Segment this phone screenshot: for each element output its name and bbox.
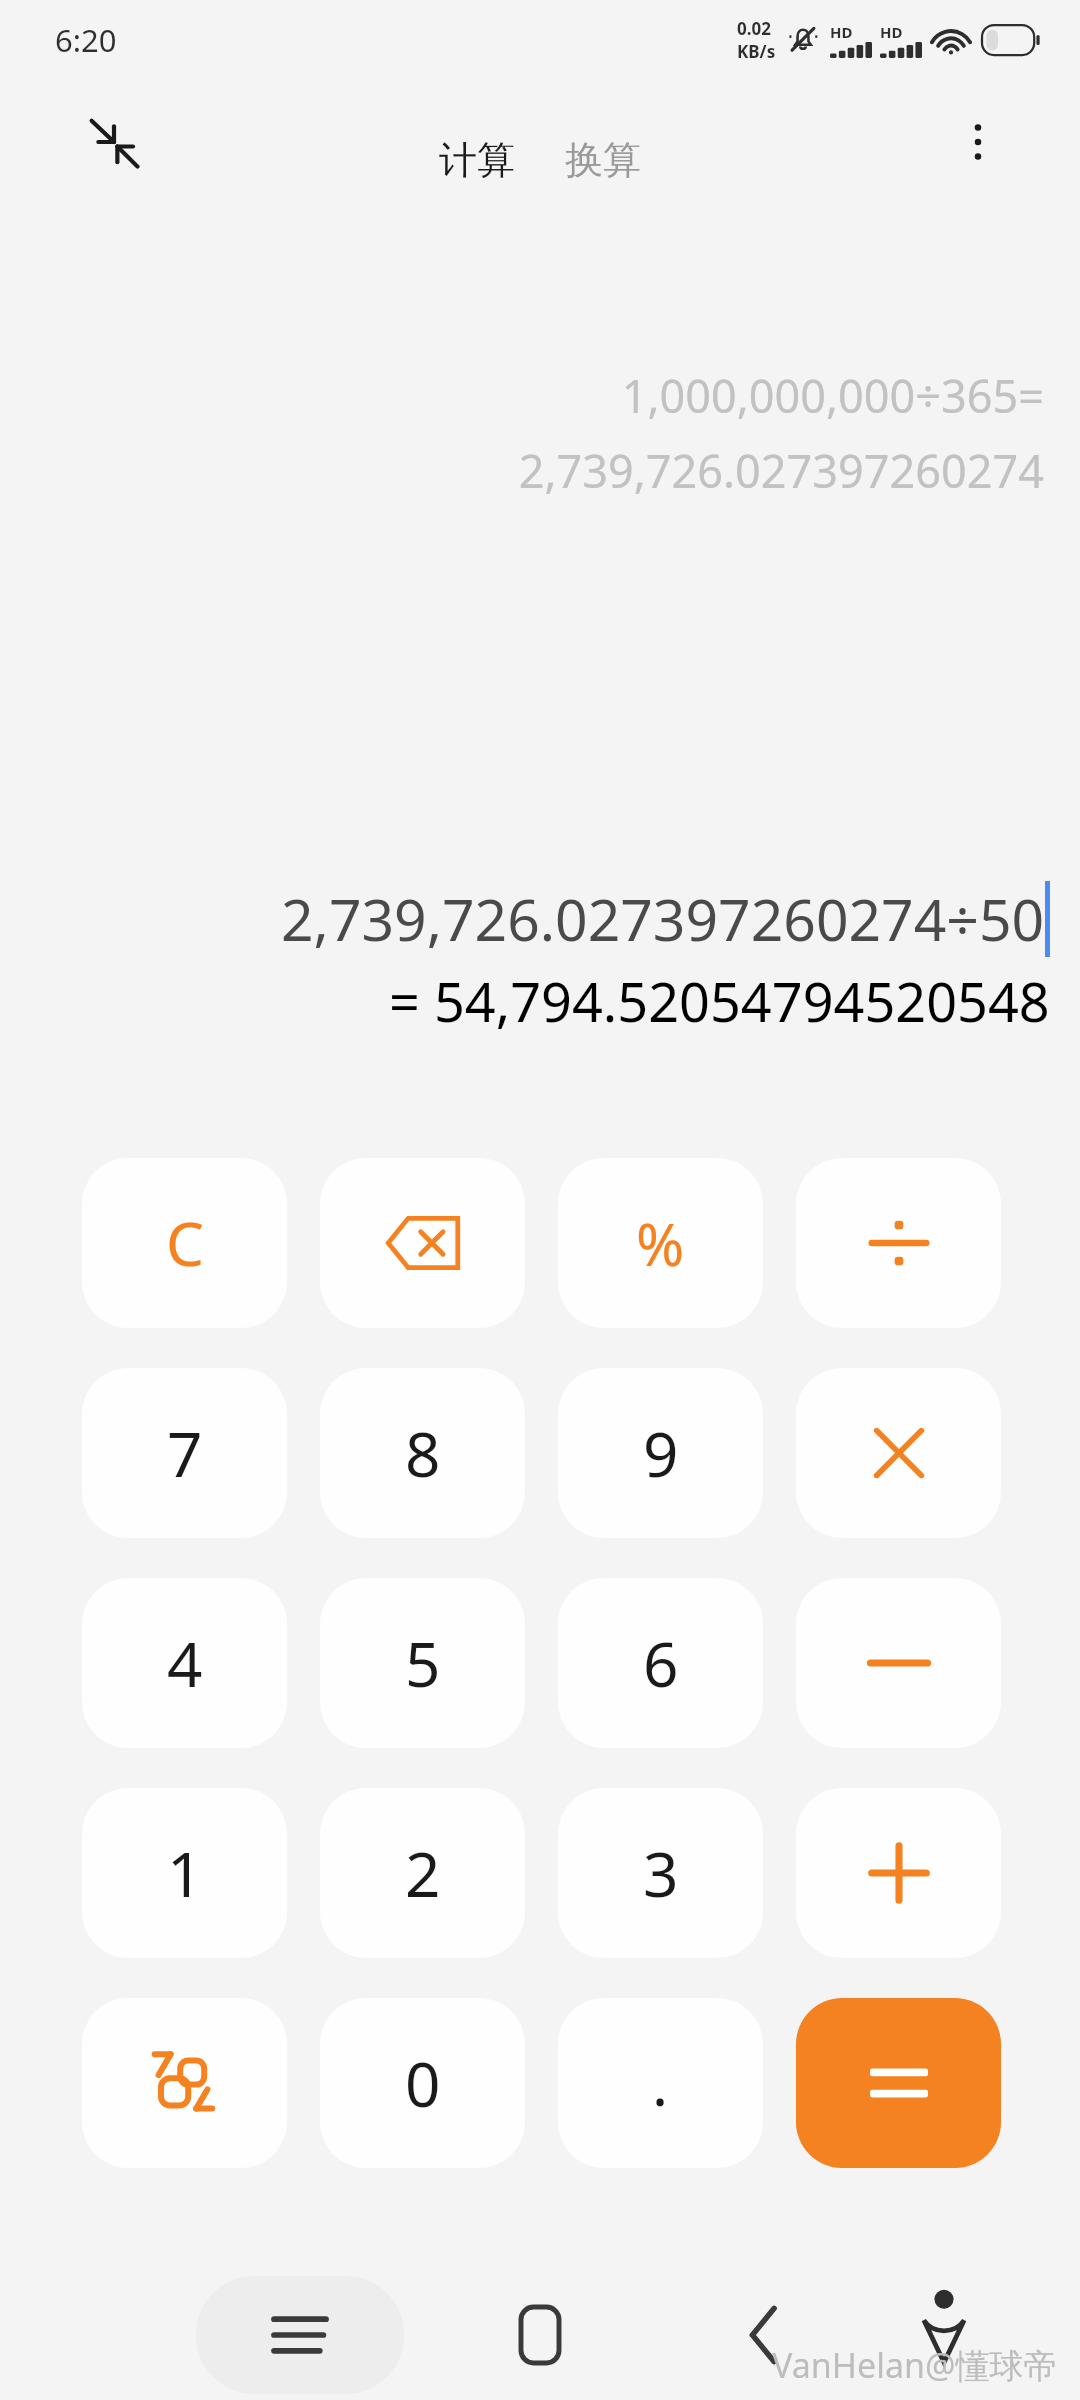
staticText: 7: [167, 1411, 203, 1495]
staticText: 6: [643, 1621, 679, 1705]
staticText: C: [166, 1202, 204, 1284]
button[interactable]: Percent: [558, 1158, 763, 1328]
button[interactable]: .: [558, 1998, 763, 2168]
staticText: KB/s: [737, 40, 776, 63]
staticText: 2: [405, 1831, 441, 1915]
button[interactable]: 8: [320, 1368, 525, 1538]
button[interactable]: 4: [82, 1578, 287, 1748]
button[interactable]: 计算: [431, 132, 523, 188]
button[interactable]: 1: [82, 1788, 287, 1958]
button[interactable]: 3: [558, 1788, 763, 1958]
staticText: %: [636, 1204, 685, 1283]
button[interactable]: 1,000,000,000÷365=: [40, 365, 1044, 501]
staticText: = 54,794.52054794520548: [389, 964, 1050, 1038]
button[interactable]: Plus: [796, 1788, 1001, 1958]
staticText: 6:20: [55, 19, 117, 61]
button[interactable]: Backspace: [320, 1158, 525, 1328]
staticText: 2,739,726.027397260274: [518, 440, 1044, 501]
button[interactable]: Recent apps: [240, 2292, 360, 2378]
button[interactable]: 2: [320, 1788, 525, 1958]
staticText: 3: [643, 1831, 679, 1915]
staticText: 1,000,000,000÷365=: [621, 365, 1044, 426]
button[interactable]: 7: [82, 1368, 287, 1538]
button[interactable]: Back: [716, 2290, 812, 2380]
button[interactable]: Collapse: [72, 100, 156, 184]
button[interactable]: Equals: [796, 1998, 1001, 2168]
staticText: 2,739,726.027397260274÷50: [281, 880, 1045, 958]
staticText: HD: [830, 22, 853, 42]
button[interactable]: 0: [320, 1998, 525, 2168]
staticText: 换算: [565, 136, 641, 184]
button[interactable]: Clear: [82, 1158, 287, 1328]
staticText: 0: [405, 2041, 441, 2125]
button[interactable]: 6: [558, 1578, 763, 1748]
button[interactable]: 换算: [557, 132, 649, 188]
button[interactable]: Home: [492, 2290, 588, 2380]
button[interactable]: Divide: [796, 1158, 1001, 1328]
staticText: 8: [405, 1411, 441, 1495]
button[interactable]: Minus: [796, 1578, 1001, 1748]
staticText: HD: [880, 22, 903, 42]
button[interactable]: More options: [936, 100, 1020, 184]
staticText: 5: [405, 1621, 441, 1705]
staticText: 计算: [439, 136, 515, 184]
button[interactable]: 5: [320, 1578, 525, 1748]
button[interactable]: Scientific calculator: [82, 1998, 287, 2168]
staticText: 0.02: [737, 17, 771, 40]
button[interactable]: 2,739,726.027397260274÷50: [26, 880, 1050, 1038]
button[interactable]: 9: [558, 1368, 763, 1538]
staticText: .: [652, 2042, 669, 2124]
staticText: VanHelan@懂球帝: [772, 2342, 1058, 2388]
staticText: 4: [167, 1621, 203, 1705]
staticText: 9: [643, 1411, 679, 1495]
button[interactable]: Multiply: [796, 1368, 1001, 1538]
staticText: 1: [167, 1831, 203, 1915]
